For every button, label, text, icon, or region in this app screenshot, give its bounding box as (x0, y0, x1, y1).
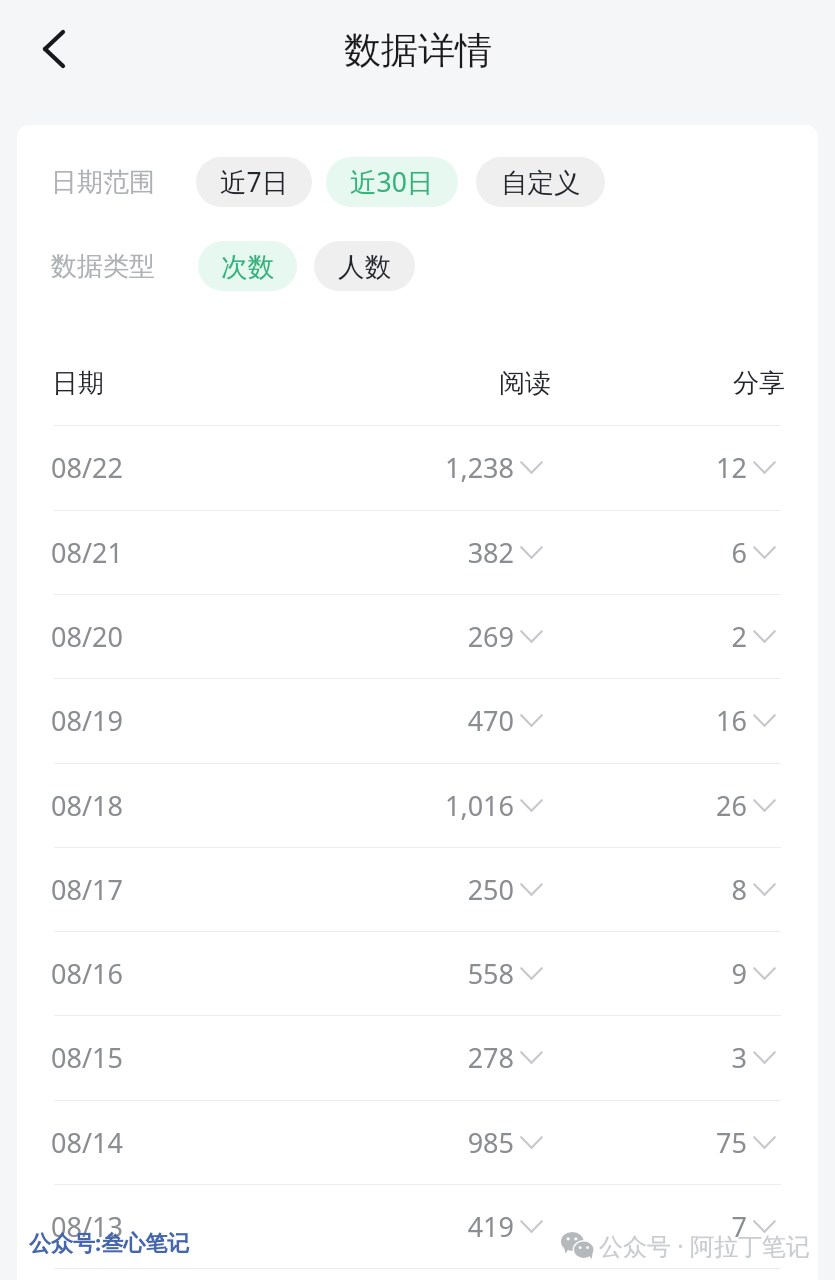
button[interactable]: 08/22 (17, 426, 818, 509)
button[interactable]: 自定义 (476, 157, 605, 207)
staticText: 985 (317, 1124, 514, 1161)
staticText: 08/20 (51, 618, 123, 655)
staticText: 08/21 (51, 534, 123, 571)
staticText: 次数 (221, 250, 274, 283)
staticText: 26 (617, 787, 747, 824)
staticText: 日期 (52, 367, 104, 400)
staticText: 自定义 (501, 166, 581, 199)
staticText: 近7日 (220, 164, 289, 200)
button[interactable]: 人数 (314, 241, 415, 291)
staticText: 近30日 (350, 164, 434, 200)
button[interactable]: 08/17 (17, 848, 818, 931)
staticText: 公众号 · 阿拉丁笔记 (599, 1229, 810, 1262)
button[interactable]: 近7日 (196, 157, 312, 207)
button[interactable]: 08/18 (17, 764, 818, 847)
button[interactable]: 次数 (198, 241, 297, 291)
staticText: 08/16 (51, 955, 123, 992)
staticText: 16 (617, 702, 747, 739)
staticText: 470 (317, 702, 514, 739)
staticText: 9 (617, 955, 747, 992)
staticText: 数据详情 (344, 27, 492, 74)
staticText: 08/17 (51, 871, 123, 908)
staticText: 08/18 (51, 787, 123, 824)
staticText: 08/22 (51, 449, 123, 486)
button[interactable]: Back (22, 17, 86, 81)
staticText: 12 (617, 449, 747, 486)
staticText: 2 (617, 618, 747, 655)
button[interactable]: 08/20 (17, 595, 818, 678)
button[interactable]: 08/14 (17, 1101, 818, 1184)
staticText: 419 (317, 1208, 514, 1245)
staticText: 1,238 (317, 449, 514, 486)
button[interactable]: 08/21 (17, 511, 818, 594)
staticText: 3 (617, 1039, 747, 1076)
button[interactable]: 08/16 (17, 932, 818, 1015)
staticText: 08/14 (51, 1124, 123, 1161)
staticText: 75 (617, 1124, 747, 1161)
staticText: 269 (317, 618, 514, 655)
staticText: 382 (317, 534, 514, 571)
staticText: 分享 (733, 367, 785, 400)
button[interactable]: 08/15 (17, 1016, 818, 1099)
staticText: 6 (617, 534, 747, 571)
staticText: 8 (617, 871, 747, 908)
staticText: 数据类型 (51, 250, 155, 283)
staticText: 7 (617, 1208, 747, 1245)
button[interactable]: 08/13 (17, 1185, 818, 1268)
button[interactable]: 近30日 (326, 157, 458, 207)
staticText: 日期范围 (51, 166, 155, 199)
staticText: 1,016 (317, 787, 514, 824)
staticText: 阅读 (499, 367, 551, 400)
staticText: 人数 (338, 250, 391, 283)
staticText: 08/15 (51, 1039, 123, 1076)
staticText: 250 (317, 871, 514, 908)
staticText: 558 (317, 955, 514, 992)
staticText: 08/19 (51, 702, 123, 739)
staticText: 公众号:叁心笔记 (29, 1227, 190, 1257)
staticText: 08/13 (51, 1208, 123, 1245)
button[interactable]: 08/19 (17, 679, 818, 762)
staticText: 278 (317, 1039, 514, 1076)
